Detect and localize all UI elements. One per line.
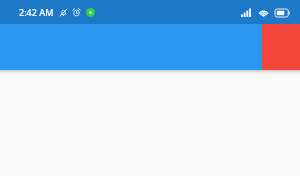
staticText: 2:42 AM (19, 6, 54, 18)
